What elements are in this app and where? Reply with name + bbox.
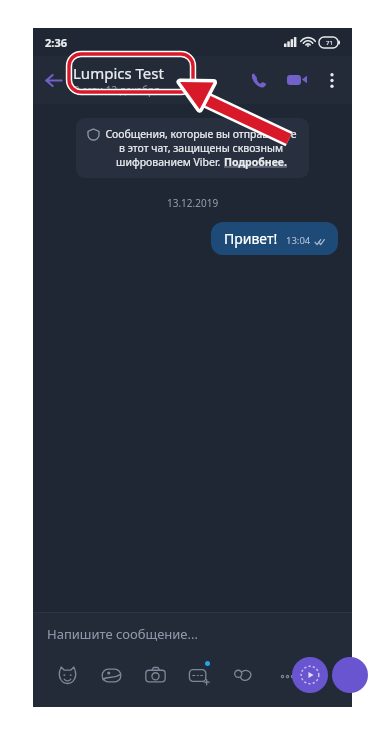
- staticText: 13:04: [286, 234, 311, 247]
- button[interactable]: Сообщения, которые вы отправляете: [76, 118, 309, 178]
- staticText: в этот чат, защищены сквозным: [119, 141, 283, 155]
- staticText: шифрованием Viber.: [116, 155, 224, 169]
- button[interactable]: More: [265, 653, 309, 697]
- button[interactable]: Привет!: [211, 222, 338, 255]
- button[interactable]: Call: [240, 61, 278, 99]
- staticText: 2:36: [45, 35, 67, 50]
- button[interactable]: More options: [316, 64, 348, 96]
- button[interactable]: Stickers: [45, 653, 89, 697]
- button[interactable]: Напишите сообщение...: [33, 625, 352, 643]
- button[interactable]: Back: [33, 60, 73, 100]
- button[interactable]: Doodle: [221, 653, 265, 697]
- button[interactable]: Voice message: [292, 657, 328, 693]
- staticText: В сети 12 декабря: [73, 83, 160, 97]
- staticText: 13.12.2019: [167, 196, 219, 210]
- staticText: Lumpics Test: [73, 63, 164, 83]
- staticText: 71: [326, 39, 333, 47]
- button[interactable]: GIF: [177, 653, 221, 697]
- button[interactable]: Video call: [278, 61, 316, 99]
- button[interactable]: Lumpics Test: [73, 63, 240, 97]
- staticText: Подробнее.: [224, 155, 287, 169]
- button[interactable]: Send: [332, 657, 368, 693]
- staticText: Привет!: [224, 229, 278, 248]
- staticText: Сообщения, которые вы отправляете: [105, 127, 297, 141]
- staticText: Напишите сообщение...: [47, 625, 198, 643]
- button[interactable]: Camera: [133, 653, 177, 697]
- button[interactable]: Gallery: [89, 653, 133, 697]
